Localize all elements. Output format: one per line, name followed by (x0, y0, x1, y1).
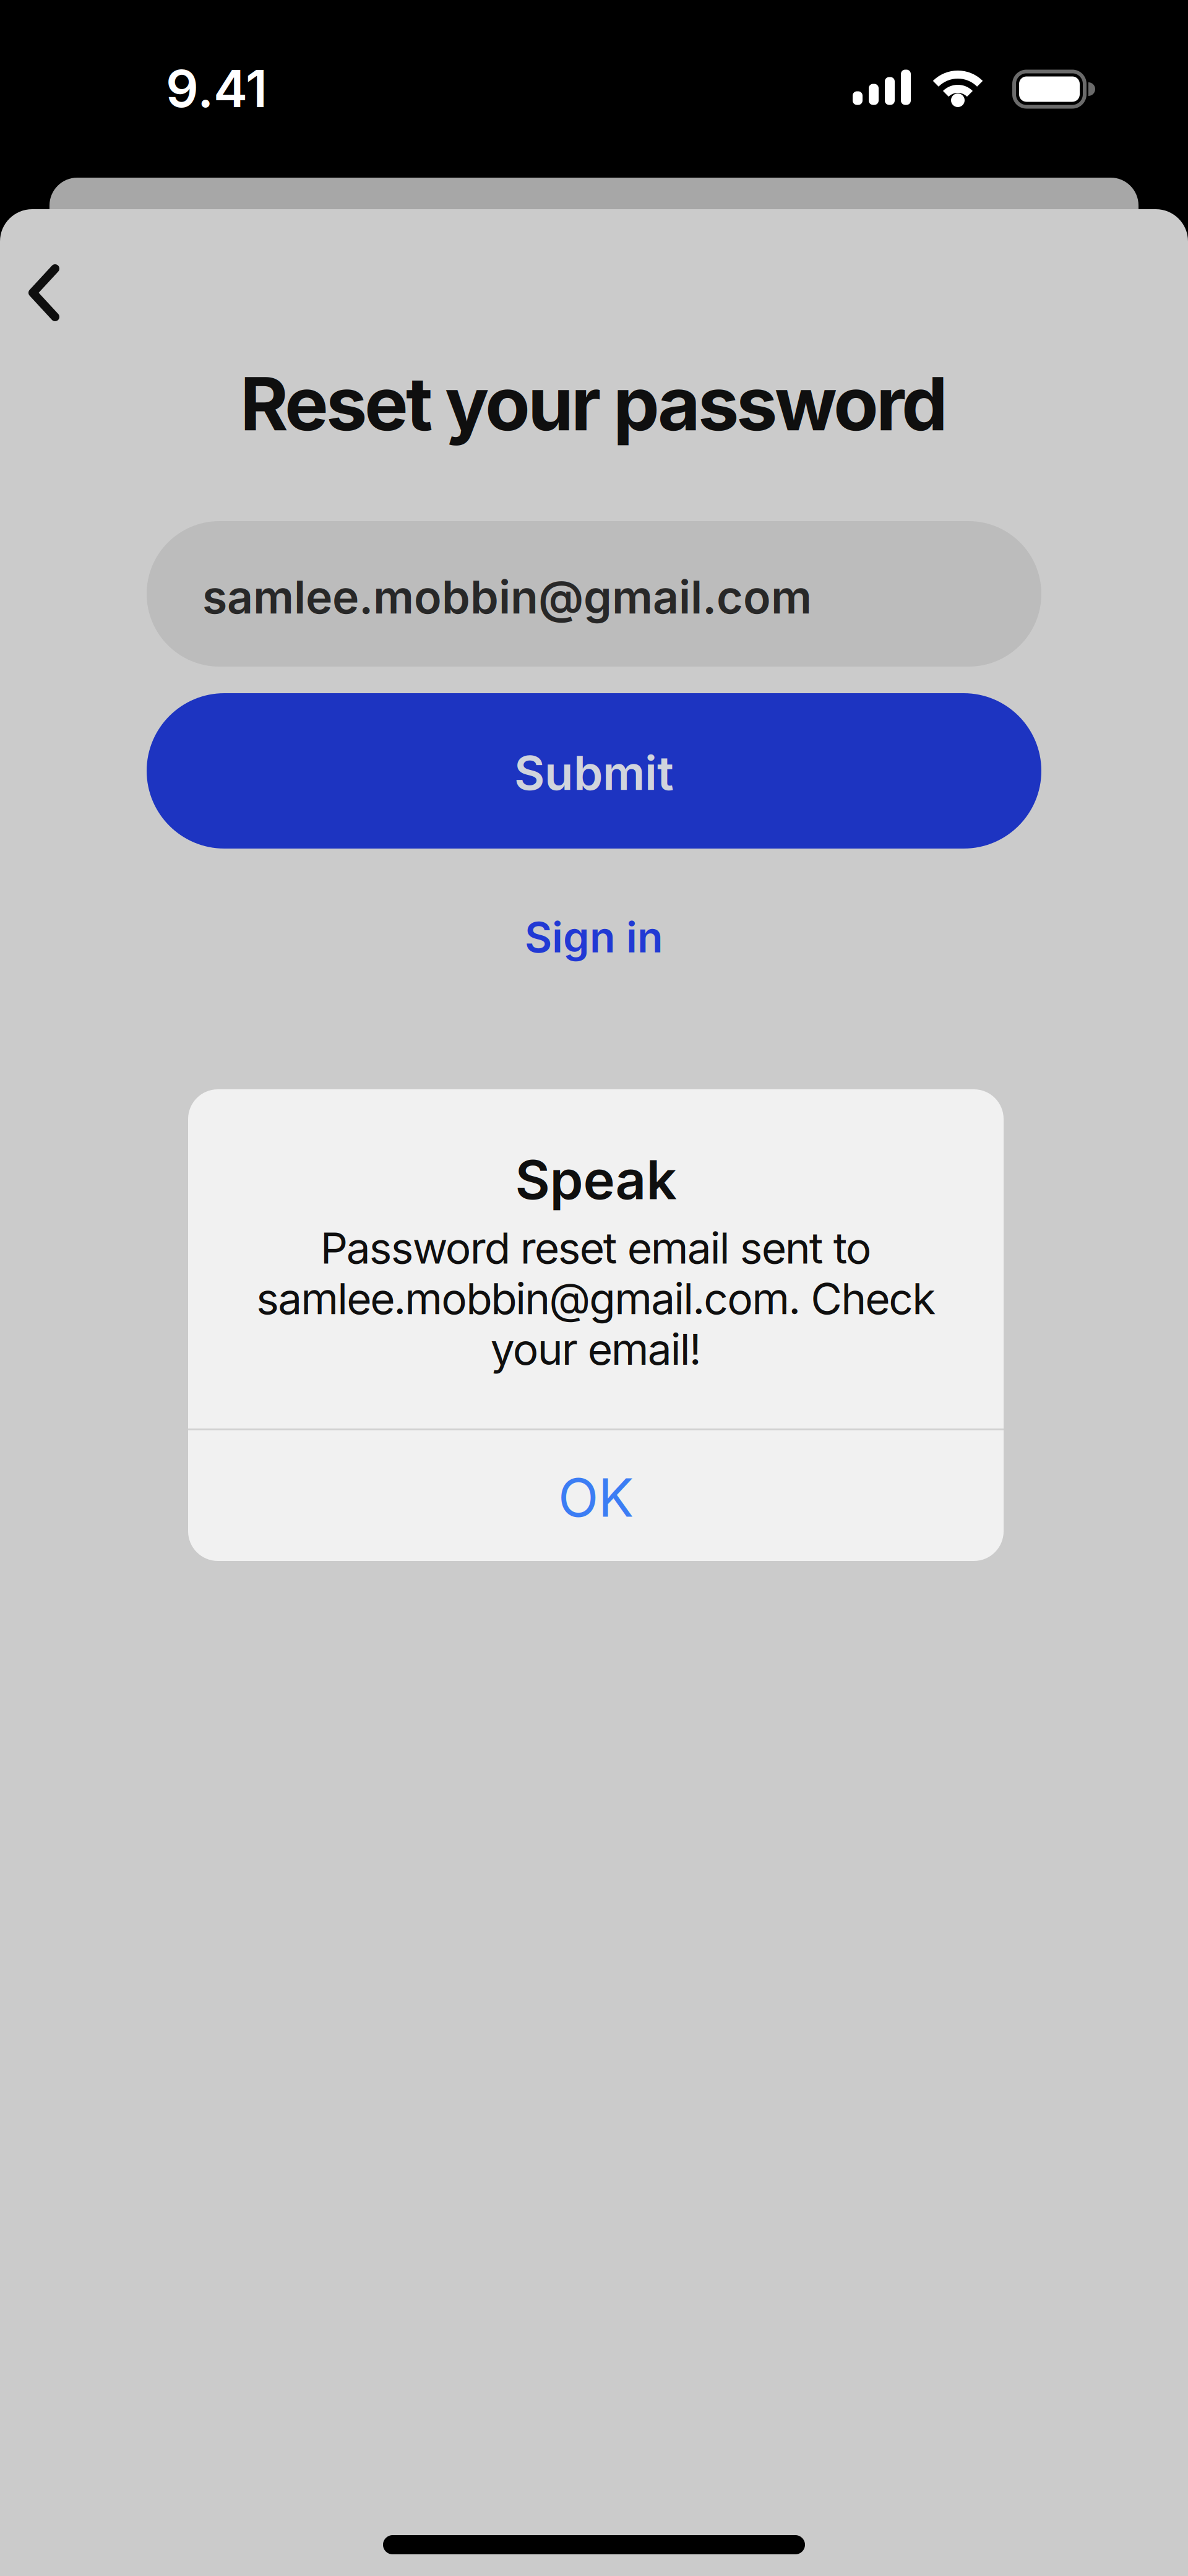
staticText: Reset your password (240, 360, 948, 447)
button[interactable]: Submit (147, 693, 1041, 849)
staticText: OK (558, 1466, 634, 1529)
staticText: 9.41 (166, 58, 267, 119)
button[interactable]: Sign in (506, 902, 682, 972)
button[interactable]: Back (0, 252, 84, 334)
button[interactable]: OK (188, 1430, 1004, 1561)
staticText: Password reset email sent to samlee.mobb… (256, 1223, 936, 1374)
staticText: Speak (515, 1148, 677, 1211)
staticText: samlee.mobbin@gmail.com (202, 570, 812, 624)
staticText: Sign in (525, 912, 663, 962)
button[interactable]: Email (147, 521, 1041, 667)
staticText: Submit (514, 745, 674, 801)
